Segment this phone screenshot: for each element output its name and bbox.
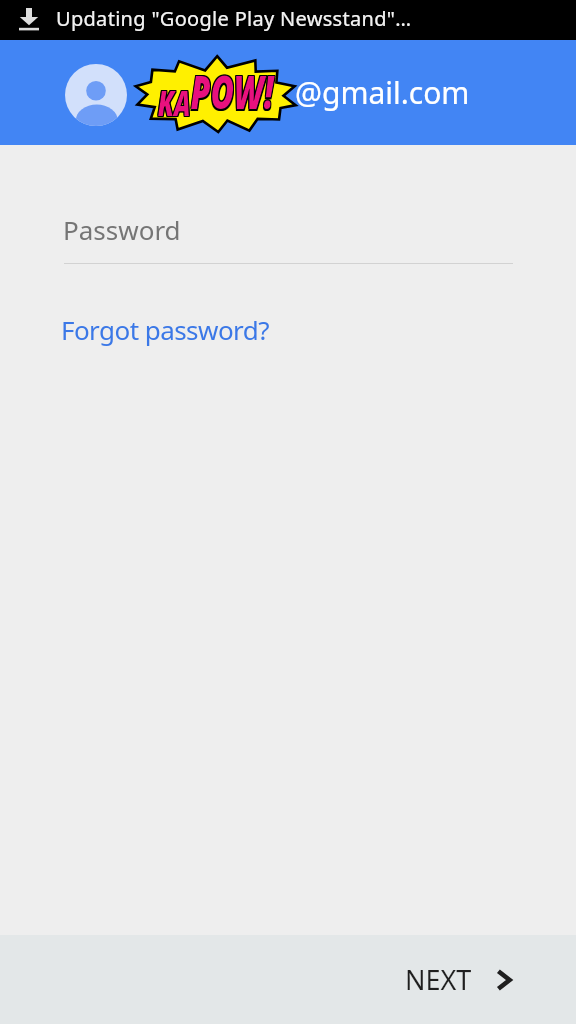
staticText: KA — [157, 79, 190, 125]
staticText: KA — [157, 77, 190, 124]
staticText: Password — [63, 212, 181, 247]
staticText: POW! — [190, 63, 273, 124]
button[interactable]: Password — [64, 200, 513, 264]
staticText: KA — [157, 80, 190, 127]
button[interactable]: Forgot password? — [61, 312, 269, 347]
staticText: KA — [158, 79, 191, 125]
staticText: KA — [159, 80, 192, 127]
staticText: POW! — [192, 61, 275, 123]
staticText: KA — [159, 77, 192, 124]
button[interactable]: Switch account — [48, 40, 488, 145]
button[interactable]: NEXT — [375, 941, 576, 1018]
staticText: Updating "Google Play Newsstand"… — [56, 5, 412, 32]
staticText: POW! — [192, 60, 275, 121]
staticText: POW! — [190, 61, 273, 123]
staticText: POW! — [191, 63, 274, 124]
other: Downloading — [19, 8, 39, 30]
staticText: Forgot password? — [61, 312, 269, 347]
staticText: POW! — [190, 60, 273, 121]
staticText: @gmail.com — [295, 72, 470, 113]
staticText: POW! — [192, 63, 275, 124]
staticText: KA — [158, 77, 191, 124]
staticText: POW! — [191, 60, 274, 121]
staticText: KA — [159, 79, 192, 125]
staticText: NEXT — [405, 961, 472, 998]
staticText: KA — [158, 80, 191, 127]
staticText: POW! — [191, 61, 274, 123]
